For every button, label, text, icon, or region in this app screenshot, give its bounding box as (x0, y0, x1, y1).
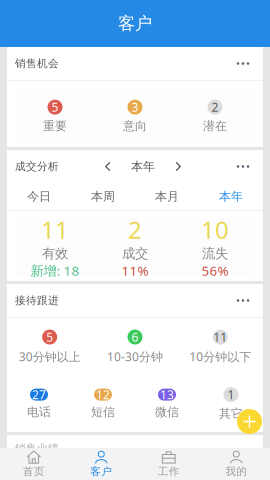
staticText: 有效 (42, 245, 68, 262)
staticText: 今日 (27, 189, 51, 204)
button[interactable]: 首页 (0, 448, 67, 480)
button[interactable]: 本年 (199, 183, 263, 210)
button[interactable]: 下一年 (169, 154, 187, 178)
staticText: 5 (51, 99, 58, 115)
staticText: 5 (46, 329, 53, 345)
staticText: 本年 (219, 189, 243, 204)
staticText: 1 (227, 387, 234, 403)
staticText: 客户 (90, 465, 112, 478)
staticText: 10 (201, 213, 229, 245)
staticText: 客户 (118, 13, 152, 34)
staticText: 微信 (155, 405, 179, 419)
staticText: 27 (32, 387, 46, 403)
staticText: 电话 (27, 405, 51, 419)
staticText: 56% (201, 262, 228, 279)
staticText: 本年 (131, 159, 155, 174)
staticText: 2 (211, 99, 218, 115)
button[interactable]: 本月 (135, 183, 199, 210)
staticText: 11 (41, 213, 69, 245)
staticText: 潜在 (203, 119, 227, 133)
staticText: 10-30分钟 (107, 348, 163, 364)
button[interactable]: 今日 (7, 183, 71, 210)
button[interactable]: 我的 (202, 448, 270, 480)
staticText: 重要 (43, 119, 67, 133)
button[interactable]: 工作 (135, 448, 202, 480)
button[interactable]: 上一年 (99, 154, 117, 178)
button[interactable]: 更多 (227, 151, 259, 181)
staticText: 意向 (123, 119, 147, 133)
staticText: 短信 (91, 405, 115, 419)
staticText: 11 (213, 329, 227, 345)
staticText: 工作 (158, 465, 180, 478)
staticText: 10分钟以下 (189, 348, 251, 364)
button[interactable]: 更多 (227, 48, 259, 78)
staticText: 成交 (122, 245, 148, 262)
staticText: 13 (160, 387, 174, 403)
staticText: 成交分析 (15, 160, 59, 173)
staticText: 本月 (155, 189, 179, 204)
staticText: 首页 (23, 465, 45, 478)
staticText: 2 (128, 213, 142, 245)
button[interactable]: 客户 (67, 448, 135, 480)
staticText: 我的 (225, 465, 247, 478)
staticText: 销售机会 (15, 57, 59, 70)
staticText: 流失 (202, 245, 228, 262)
staticText: 接待跟进 (15, 294, 59, 307)
staticText: 销售业绩 (15, 442, 59, 455)
staticText: 6 (131, 329, 138, 345)
staticText: 新增: 18 (30, 262, 79, 279)
staticText: 30分钟以上 (19, 348, 81, 364)
staticText: 其它 (219, 406, 243, 421)
staticText: 本周 (91, 189, 115, 204)
button[interactable]: 更多 (227, 285, 259, 315)
staticText: 12 (96, 387, 110, 403)
button[interactable]: 新增 (237, 409, 262, 434)
staticText: 3 (131, 99, 138, 115)
staticText: 11% (121, 262, 148, 279)
button[interactable]: 本周 (71, 183, 135, 210)
